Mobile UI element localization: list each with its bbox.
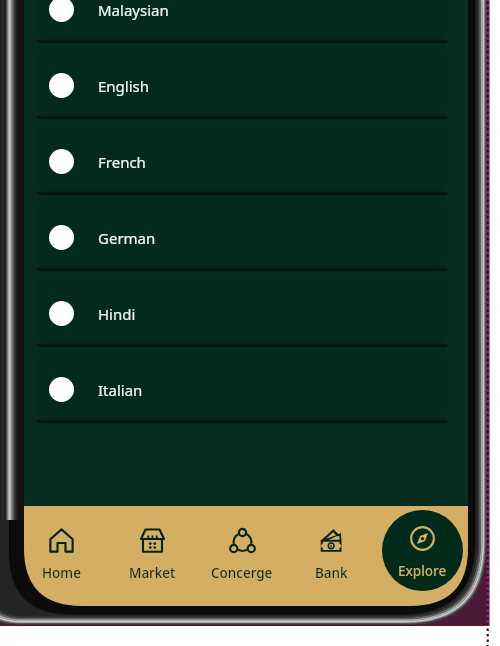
button[interactable]: Concerge: [198, 510, 286, 590]
button[interactable]: [36, 122, 448, 193]
staticText: Bank: [315, 564, 348, 582]
staticText: English: [98, 76, 150, 96]
staticText: Italian: [98, 380, 143, 400]
button[interactable]: [36, 350, 448, 421]
button[interactable]: Bank: [287, 510, 375, 590]
button[interactable]: Home: [24, 510, 105, 590]
staticText: Home: [42, 564, 81, 582]
button[interactable]: [36, 0, 448, 41]
staticText: Malaysian: [98, 0, 169, 20]
staticText: German: [98, 228, 156, 248]
button[interactable]: Explore: [382, 510, 463, 591]
staticText: Concerge: [211, 564, 273, 582]
button[interactable]: [36, 198, 448, 269]
button[interactable]: Market: [108, 510, 196, 590]
staticText: Market: [129, 564, 176, 582]
staticText: French: [98, 152, 146, 172]
staticText: Explore: [398, 562, 447, 580]
button[interactable]: [36, 46, 448, 117]
button[interactable]: [36, 274, 448, 345]
staticText: Hindi: [98, 304, 136, 324]
